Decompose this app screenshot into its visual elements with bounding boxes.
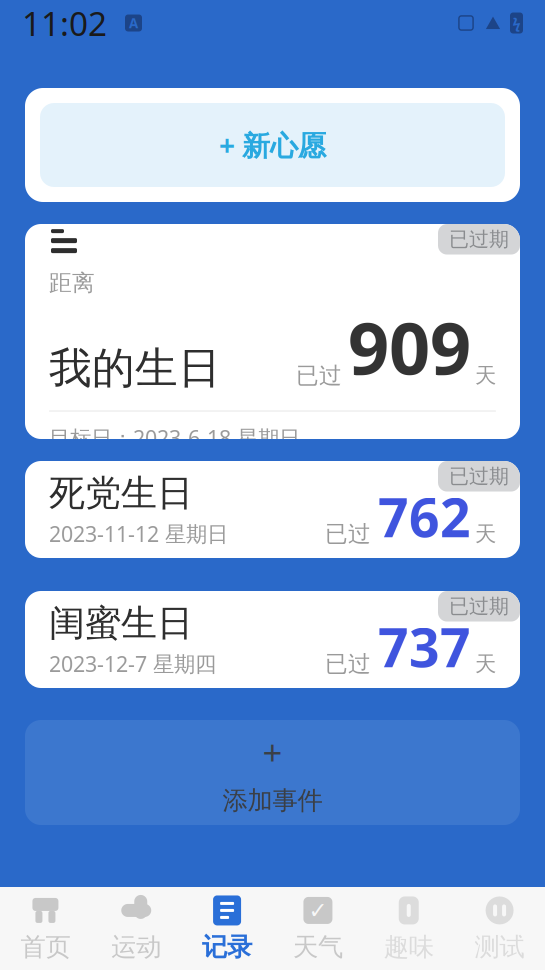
staticText: 天 <box>475 651 496 677</box>
staticText: 闺蜜生日 <box>49 601 193 645</box>
staticText: 天 <box>475 362 496 389</box>
staticText: 已过期 <box>449 464 509 489</box>
staticText: 已过期 <box>449 227 509 252</box>
staticText: 测试 <box>475 931 525 962</box>
button[interactable]: 距离 <box>25 224 520 439</box>
staticText: 11:02 <box>22 1 107 45</box>
staticText: 2023-11-12 星期日 <box>49 519 228 548</box>
button[interactable]: 闺蜜生日 <box>25 591 520 688</box>
staticText: 909 <box>348 299 471 394</box>
staticText: 已过 <box>296 362 342 389</box>
staticText: 运动 <box>111 931 161 962</box>
staticText: 距离 <box>49 269 95 297</box>
staticText: 目标日：2023-6-18 星期日 <box>49 424 300 452</box>
staticText: A <box>129 14 138 32</box>
staticText: ✓ <box>308 898 327 923</box>
staticText: 天 <box>475 521 496 547</box>
staticText: 添加事件 <box>222 785 322 816</box>
staticText: 2023-12-7 星期四 <box>49 649 216 678</box>
button[interactable]: + 新心愿 <box>25 88 520 202</box>
staticText: 天气 <box>293 931 343 962</box>
staticText: + 新心愿 <box>219 126 326 164</box>
button[interactable]: 运动 <box>91 887 182 970</box>
staticText: 已过期 <box>449 594 509 619</box>
staticText: 首页 <box>20 931 70 962</box>
staticText: 死党生日 <box>49 471 193 515</box>
button[interactable]: 测试 <box>454 887 545 970</box>
staticText: 762 <box>378 481 471 552</box>
staticText: 737 <box>378 611 471 682</box>
button[interactable]: 首页 <box>0 887 91 970</box>
staticText: 已过 <box>325 520 371 548</box>
staticText: 记录 <box>202 931 252 962</box>
button[interactable]: ✓ <box>272 887 363 970</box>
staticText: 趣味 <box>384 931 434 962</box>
staticText: 我的生日 <box>49 342 221 395</box>
button[interactable]: + <box>25 720 520 825</box>
staticText: ϟ <box>512 13 520 33</box>
button[interactable]: 趣味 <box>363 887 454 970</box>
button[interactable]: 死党生日 <box>25 461 520 558</box>
button[interactable]: 记录 <box>182 887 272 970</box>
staticText: 已过 <box>325 650 371 678</box>
staticText: + <box>262 729 282 775</box>
